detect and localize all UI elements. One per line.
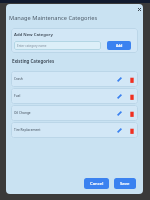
button[interactable]: Add <box>107 41 131 50</box>
button[interactable]: Fuel <box>11 88 138 104</box>
button[interactable]: Tire Replacement <box>11 122 138 138</box>
staticText: Cancel <box>90 181 104 187</box>
button[interactable]: Delete Oil Change <box>127 109 136 118</box>
staticText: Fuel <box>14 94 21 98</box>
button[interactable]: Delete Tire Replacement <box>127 126 136 135</box>
button[interactable]: Edit Oil Change <box>115 109 124 118</box>
staticText: Oil Change <box>14 111 31 115</box>
button[interactable]: Enter category name <box>14 41 101 50</box>
staticText: Save <box>120 181 130 187</box>
button[interactable]: Edit Crash <box>115 75 124 84</box>
button[interactable]: Edit Tire Replacement <box>115 126 124 135</box>
button[interactable]: Crash <box>11 71 138 87</box>
button[interactable]: Close <box>134 4 143 14</box>
staticText: Crash <box>14 77 23 81</box>
staticText: Tire Replacement <box>14 128 41 132</box>
button[interactable]: Delete Crash <box>127 75 136 84</box>
staticText: Manage Maintenance Categories <box>9 14 98 22</box>
button[interactable]: Save <box>114 178 136 189</box>
button[interactable]: Oil Change <box>11 105 138 121</box>
staticText: Add <box>116 44 123 48</box>
staticText: Existing Categories <box>12 58 55 64</box>
button[interactable]: Delete Fuel <box>127 92 136 101</box>
staticText: Add New Category <box>14 32 53 38</box>
button[interactable]: Cancel <box>84 178 109 189</box>
staticText: Enter category name <box>17 44 47 48</box>
button[interactable]: Edit Fuel <box>115 92 124 101</box>
